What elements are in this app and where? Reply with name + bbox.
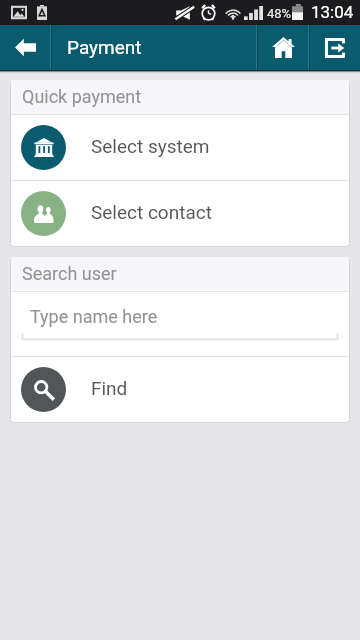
staticText: Search user (22, 263, 117, 284)
staticText: Quick payment (22, 86, 142, 107)
staticText: Select system (91, 135, 210, 157)
button[interactable]: Log out (310, 25, 360, 70)
button[interactable]: Select system (11, 115, 349, 180)
staticText: 48% (267, 6, 292, 21)
staticText: Type name here (30, 306, 158, 327)
button[interactable]: Home (258, 25, 308, 70)
staticText: 13:04 (311, 2, 354, 22)
button[interactable]: Find (11, 357, 349, 422)
staticText: Find (91, 377, 128, 399)
staticText: Payment (67, 36, 142, 58)
button[interactable]: Select contact (11, 181, 349, 246)
button[interactable]: Back (0, 25, 50, 70)
staticText: Select contact (91, 201, 212, 223)
